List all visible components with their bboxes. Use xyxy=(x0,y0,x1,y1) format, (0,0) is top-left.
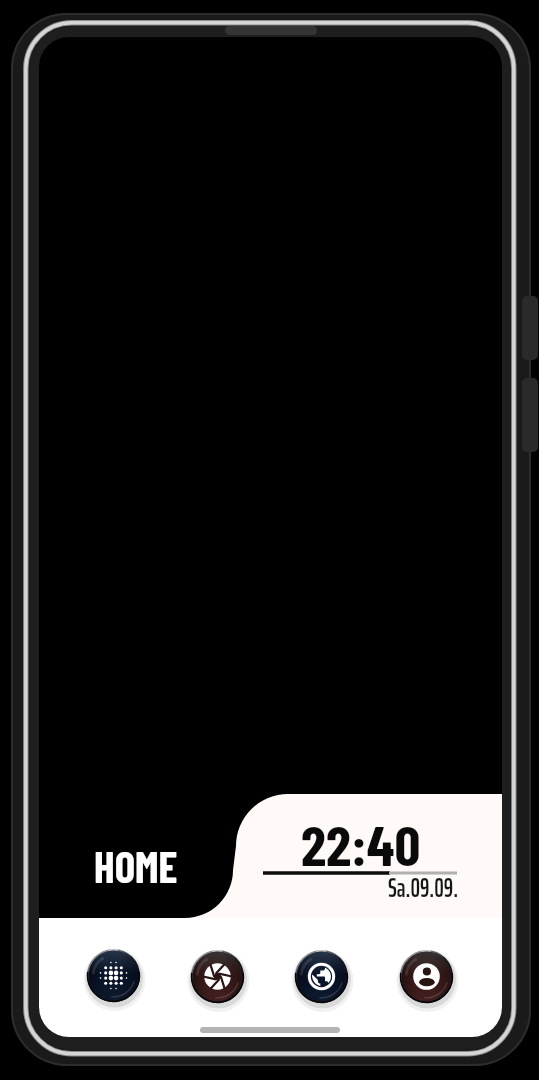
button[interactable]: Contacts xyxy=(394,944,459,1009)
button[interactable]: Sa.09.09. xyxy=(388,876,458,898)
button[interactable]: Apps xyxy=(81,943,146,1008)
staticText: HOME xyxy=(94,840,178,892)
button[interactable]: 22:40 xyxy=(301,817,419,869)
button[interactable]: HOME xyxy=(94,844,178,888)
staticText: Sa.09.09. xyxy=(388,867,459,908)
button[interactable]: Camera xyxy=(185,944,250,1009)
staticText: 22:40 xyxy=(301,810,420,877)
button[interactable]: Browser xyxy=(289,944,354,1009)
